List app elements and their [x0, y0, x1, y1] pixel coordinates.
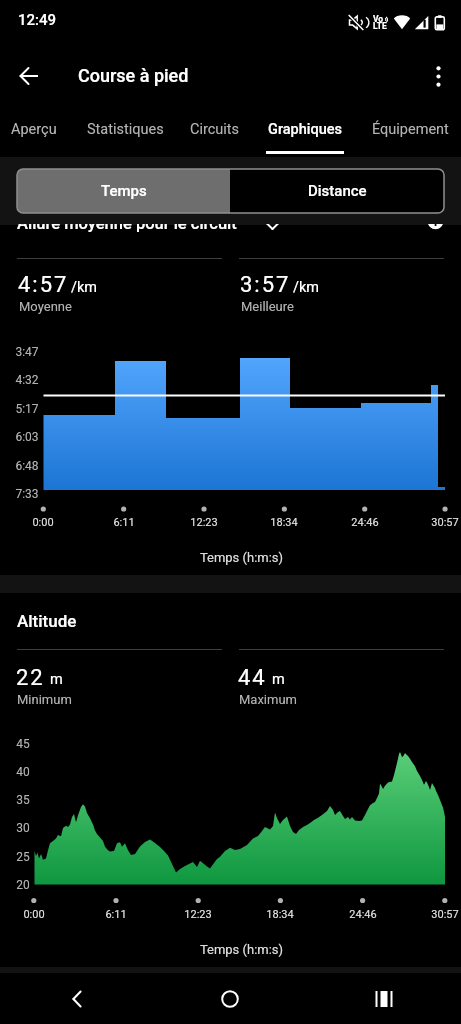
staticText: Distance	[308, 182, 367, 200]
staticText: 6:48	[13, 459, 41, 473]
staticText: 3:47	[13, 345, 41, 359]
staticText: /km	[293, 279, 320, 296]
button[interactable]: Back	[8, 54, 52, 98]
staticText: 45	[12, 737, 34, 751]
staticText: 44	[238, 665, 267, 691]
button[interactable]: Graphiques	[257, 104, 353, 156]
staticText: Aperçu	[11, 121, 57, 138]
staticText: 6:11	[92, 516, 156, 529]
staticText: 0:00	[11, 516, 75, 529]
staticText: 6:03	[13, 430, 41, 444]
button[interactable]: Allure moyenne pour le circuit	[0, 224, 461, 234]
staticText: 3:57	[240, 272, 291, 298]
button[interactable]: Altitude	[0, 604, 461, 638]
staticText: Minimum	[17, 692, 72, 707]
staticText: /km	[71, 279, 98, 296]
staticText: 20	[12, 878, 34, 892]
staticText: 30:57	[413, 516, 461, 529]
staticText: Temps	[101, 182, 147, 200]
staticText: 5:17	[13, 402, 41, 416]
button[interactable]: Home	[153, 973, 307, 1024]
staticText: 22	[16, 665, 45, 691]
staticText: 12:23	[172, 516, 236, 529]
staticText: Graphiques	[268, 121, 342, 138]
staticText: 4:57	[18, 272, 69, 298]
staticText: 0:00	[2, 908, 66, 921]
button[interactable]: Équipement	[355, 104, 461, 156]
staticText: Statistiques	[87, 121, 164, 138]
staticText: 7:33	[13, 487, 41, 501]
staticText: m	[272, 671, 285, 688]
staticText: 24:46	[333, 516, 397, 529]
staticText: 18:34	[248, 908, 312, 921]
button[interactable]: Temps	[17, 169, 230, 213]
staticText: Meilleure	[241, 299, 294, 314]
staticText: Allure moyenne pour le circuit	[17, 224, 237, 233]
staticText: Course à pied	[78, 65, 189, 86]
staticText: Moyenne	[19, 299, 72, 314]
staticText: Vo	[373, 14, 384, 24]
staticText: 12:49	[18, 11, 57, 29]
button[interactable]: Circuits	[175, 104, 255, 156]
staticText: 4:32	[13, 373, 41, 387]
staticText: 6:11	[84, 908, 148, 921]
button[interactable]: Back	[0, 973, 153, 1024]
staticText: Équipement	[372, 121, 449, 138]
staticText: 30	[12, 821, 34, 835]
staticText: Temps (h:m:s)	[11, 942, 461, 957]
button[interactable]: Info	[427, 224, 445, 231]
staticText: Maximum	[239, 692, 297, 707]
button[interactable]: Recent apps	[307, 973, 461, 1024]
staticText: Altitude	[17, 611, 77, 631]
button[interactable]: More options	[416, 54, 460, 98]
staticText: 24:46	[331, 908, 395, 921]
staticText: m	[50, 671, 63, 688]
staticText: 30:57	[413, 908, 461, 921]
button[interactable]: Distance	[230, 169, 444, 213]
staticText: Circuits	[190, 121, 240, 138]
staticText: 18:34	[252, 516, 316, 529]
staticText: 12:23	[166, 908, 230, 921]
staticText: 25	[12, 850, 34, 864]
staticText: LTE	[373, 21, 387, 31]
button[interactable]: Statistiques	[73, 104, 177, 156]
button[interactable]: Aperçu	[0, 104, 70, 156]
staticText: Temps (h:m:s)	[11, 550, 461, 565]
staticText: 35	[12, 793, 34, 807]
staticText: 40	[12, 765, 34, 779]
